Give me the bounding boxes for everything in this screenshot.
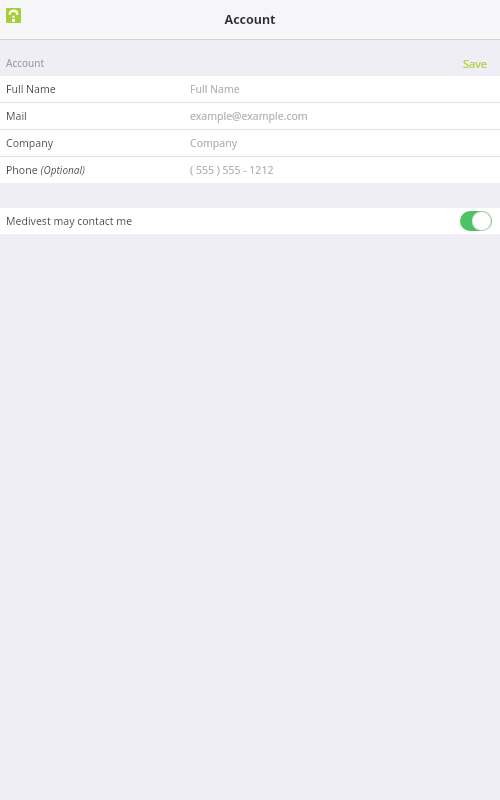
button[interactable]: Save	[455, 56, 488, 76]
staticText: Save	[463, 56, 488, 71]
button[interactable]: Company	[0, 130, 500, 156]
button[interactable]: Help	[6, 8, 21, 23]
button[interactable]: Medivest may contact me toggle	[460, 211, 492, 231]
button[interactable]: Mail	[0, 103, 500, 129]
staticText: Company	[6, 136, 53, 150]
button[interactable]: Medivest may contact me	[0, 208, 500, 234]
staticText: ( 555 ) 555 - 1212	[190, 163, 274, 177]
staticText: Full Name	[6, 82, 56, 96]
button[interactable]: Phone	[0, 157, 500, 183]
staticText: Medivest may contact me	[6, 214, 133, 228]
staticText: example@example.com	[190, 109, 308, 123]
staticText: Account	[6, 56, 45, 70]
staticText: Mail	[6, 109, 27, 123]
staticText: (Optional)	[38, 163, 85, 177]
staticText: Phone	[6, 163, 38, 177]
staticText: Account	[224, 11, 276, 28]
staticText: Full Name	[190, 82, 240, 96]
staticText: Company	[190, 136, 237, 150]
button[interactable]: Full Name	[0, 76, 500, 102]
